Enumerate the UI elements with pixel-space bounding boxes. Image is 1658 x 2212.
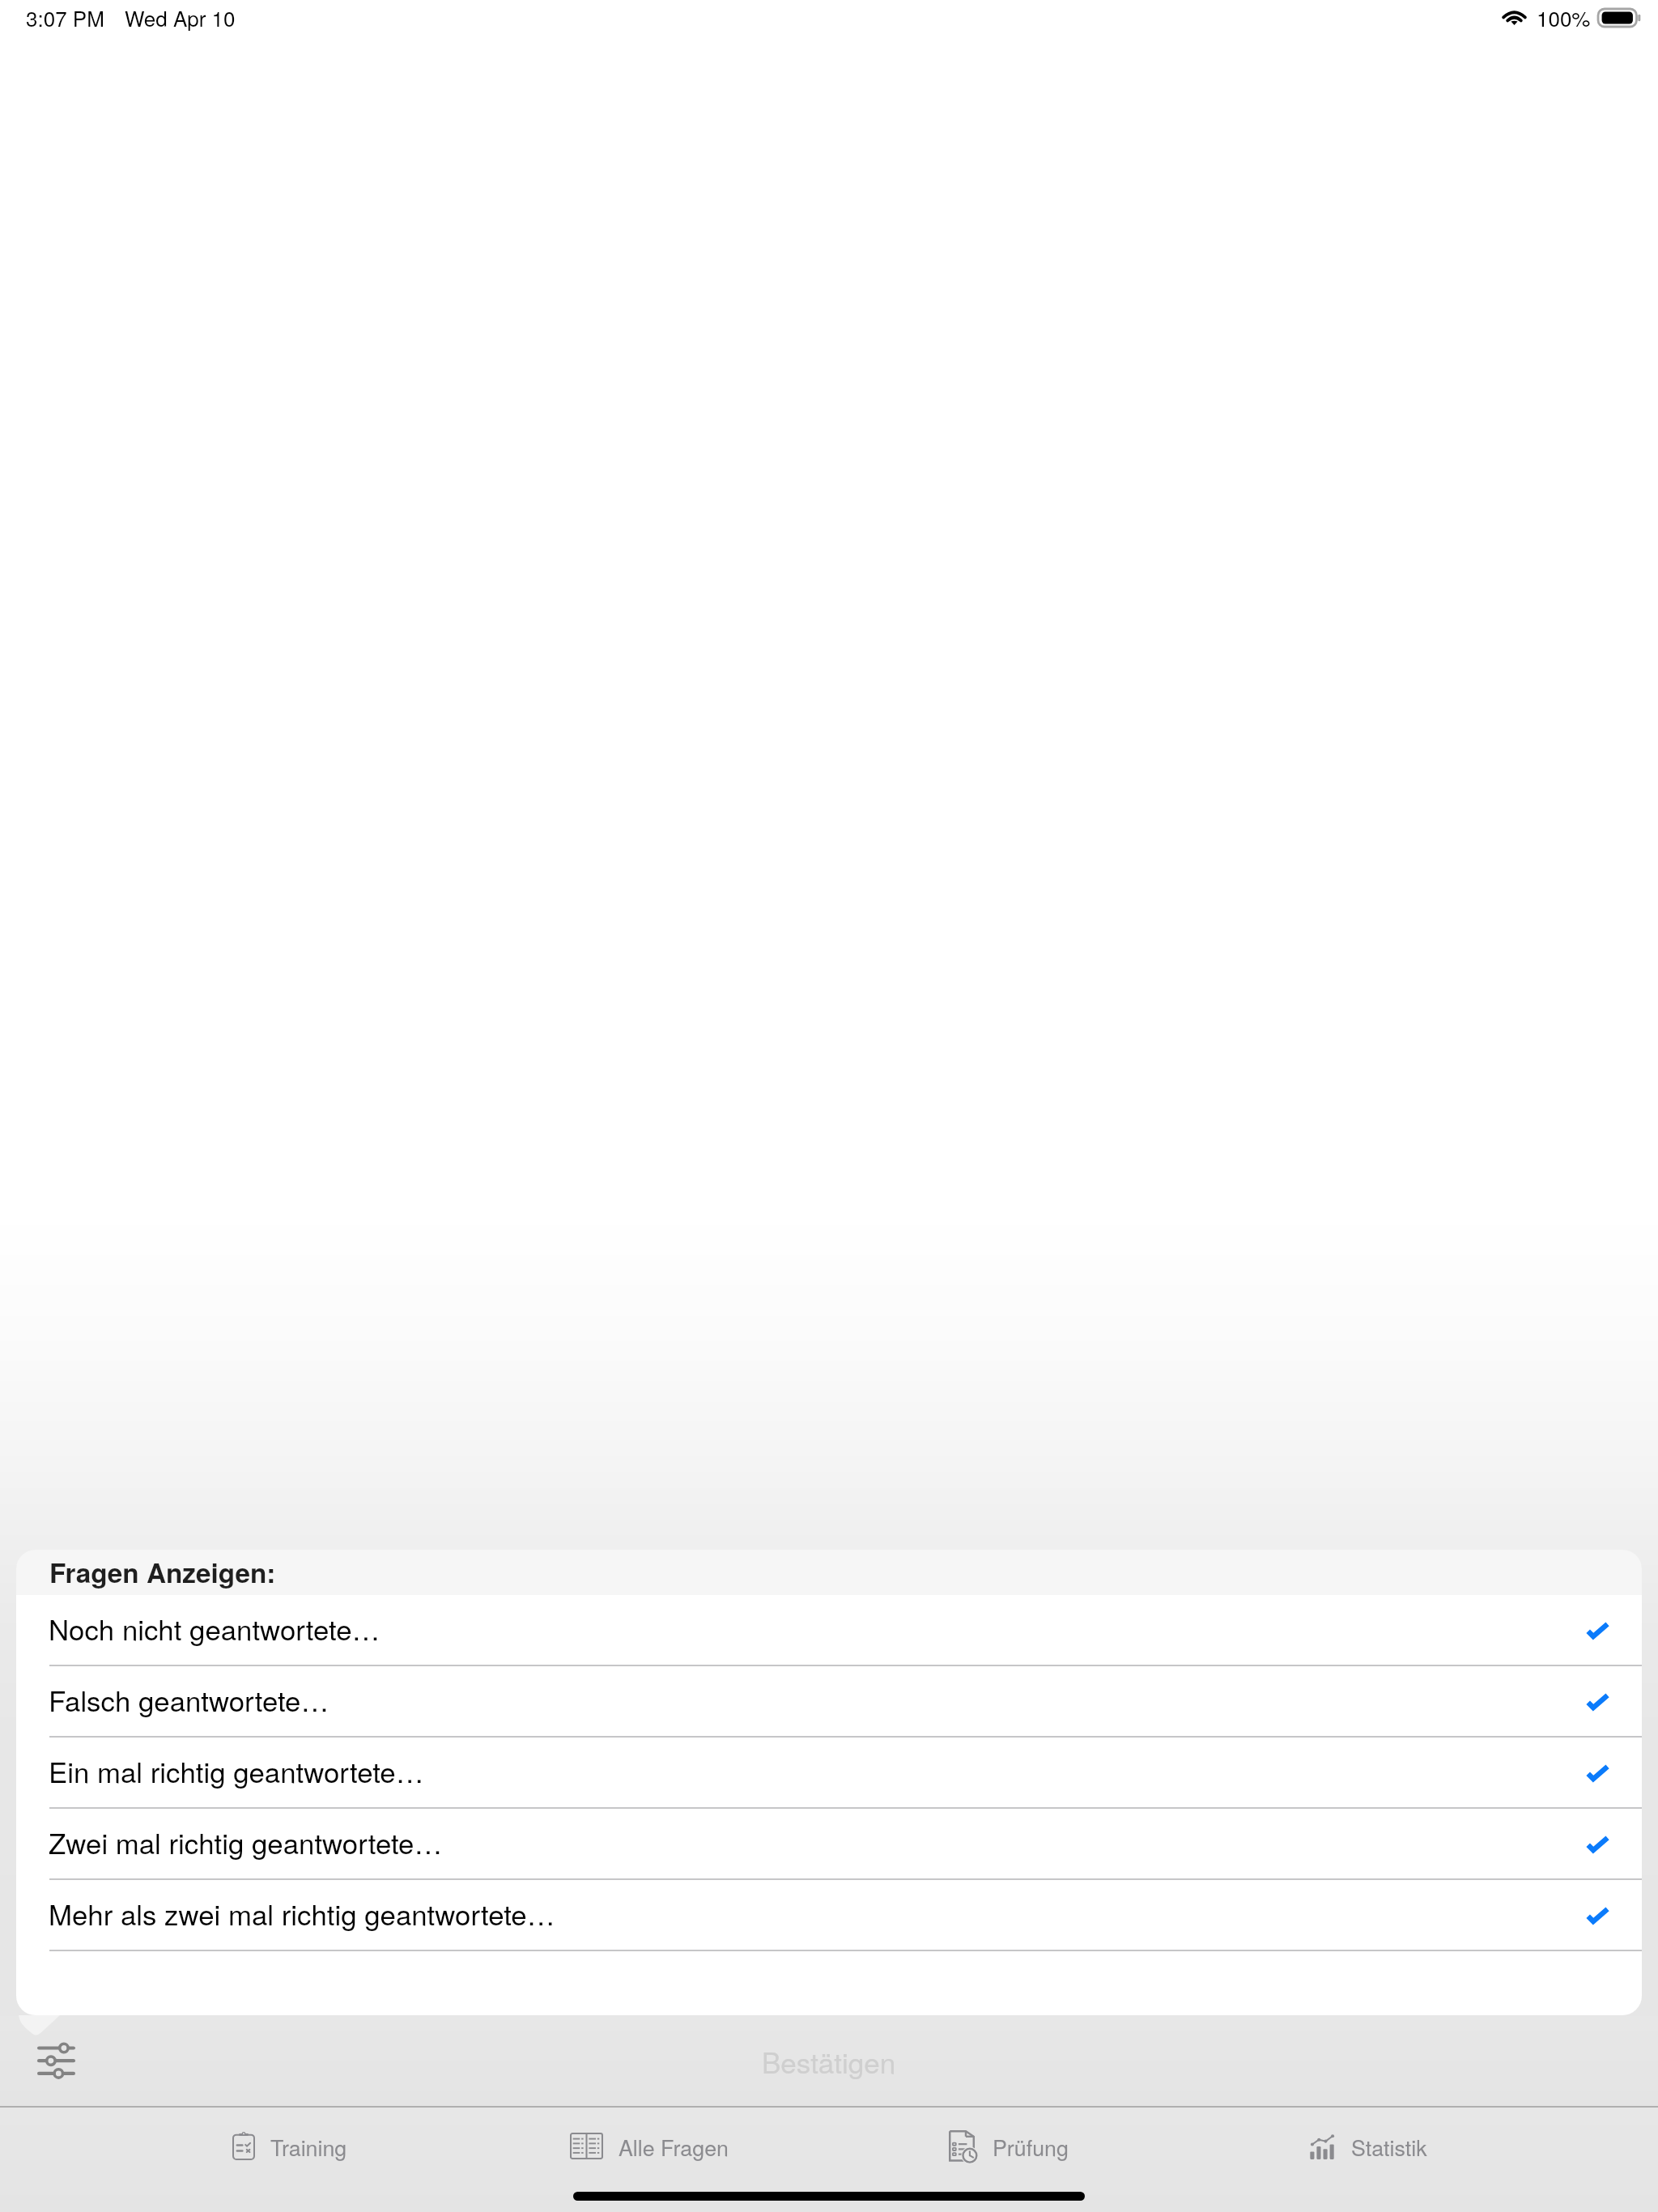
staticText: Prüfung [993,2131,1069,2162]
button[interactable]: Mehr als zwei mal richtig geantwortete… [16,1880,1642,1950]
staticText: Falsch geantwortete… [49,1679,329,1720]
staticText: Training [270,2131,347,2162]
staticText: 3:07 PM [26,2,104,32]
staticText: Bestätigen [762,2041,896,2082]
staticText: Statistik [1351,2131,1427,2162]
button[interactable]: Prüfung [829,2108,1188,2184]
staticText: Fragen Anzeigen: [49,1553,276,1592]
button[interactable]: Falsch geantwortete… [16,1666,1642,1736]
staticText: Ein mal richtig geantwortete… [49,1750,424,1791]
staticText: Alle Fragen [619,2131,729,2162]
button[interactable]: Statistik [1188,2108,1548,2184]
staticText: Mehr als zwei mal richtig geantwortete… [49,1893,555,1933]
button[interactable]: Zwei mal richtig geantwortete… [16,1809,1642,1878]
button[interactable]: Bestätigen [708,2031,950,2091]
staticText: 100% [1537,2,1591,32]
button[interactable]: Alle Fragen [470,2108,829,2184]
button[interactable]: Ein mal richtig geantwortete… [16,1738,1642,1807]
staticText: Zwei mal richtig geantwortete… [49,1822,443,1862]
button[interactable]: Noch nicht geantwortete… [16,1595,1642,1665]
button[interactable]: Filter [23,2025,89,2091]
staticText: Noch nicht geantwortete… [49,1608,380,1648]
button[interactable]: Training [110,2108,470,2184]
staticText: Wed Apr 10 [125,2,236,32]
